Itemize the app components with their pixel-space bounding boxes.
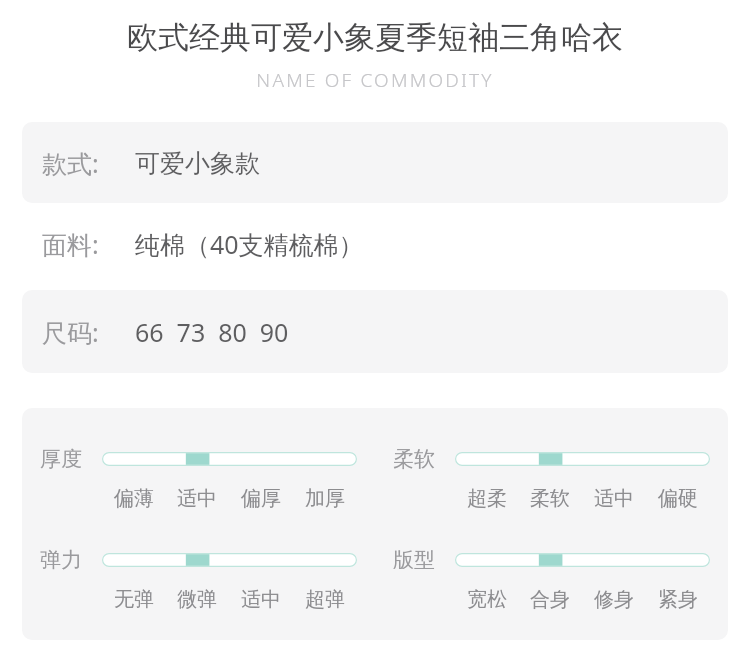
staticText: 款式: <box>42 146 99 180</box>
staticText: 超弹 <box>305 587 345 612</box>
button[interactable]: 弹力 <box>22 547 375 612</box>
other: 柔软 滑块 <box>455 452 710 466</box>
other: 厚度 滑块 <box>102 452 357 466</box>
staticText: 版型 <box>393 547 435 573</box>
staticText: 适中 <box>241 587 281 612</box>
button[interactable]: 款式: <box>22 122 728 203</box>
staticText: 弹力 <box>40 547 82 573</box>
staticText: 偏硬 <box>658 486 698 511</box>
staticText: 偏厚 <box>241 486 281 511</box>
staticText: 尺码: <box>42 315 99 349</box>
staticText: 宽松 <box>467 587 507 612</box>
staticText: 适中 <box>177 486 217 511</box>
button[interactable]: 面料: <box>22 203 728 285</box>
staticText: 超柔 <box>467 486 507 511</box>
staticText: 欧式经典可爱小象夏季短袖三角哈衣 <box>127 18 623 57</box>
staticText: NAME OF COMMODITY <box>256 67 494 93</box>
other: 弹力 滑块 <box>102 553 357 567</box>
staticText: 偏薄 <box>114 486 154 511</box>
button[interactable]: 尺码: <box>22 290 728 373</box>
button[interactable]: 厚度 <box>22 446 375 511</box>
staticText: 无弹 <box>114 587 154 612</box>
button[interactable]: 柔软 <box>375 446 728 511</box>
staticText: 微弹 <box>177 587 217 612</box>
staticText: 合身 <box>530 587 570 612</box>
button[interactable]: 版型 <box>375 547 728 612</box>
staticText: 厚度 <box>40 446 82 472</box>
staticText: 柔软 <box>530 486 570 511</box>
staticText: 适中 <box>594 486 634 511</box>
staticText: 纯棉（40支精梳棉） <box>135 227 364 261</box>
staticText: 可爱小象款 <box>135 148 260 179</box>
staticText: 面料: <box>42 227 99 261</box>
staticText: 66 73 80 90 <box>135 315 289 349</box>
staticText: 柔软 <box>393 446 435 472</box>
staticText: 紧身 <box>658 587 698 612</box>
staticText: 修身 <box>594 587 634 612</box>
staticText: 加厚 <box>305 486 345 511</box>
other: 版型 滑块 <box>455 553 710 567</box>
